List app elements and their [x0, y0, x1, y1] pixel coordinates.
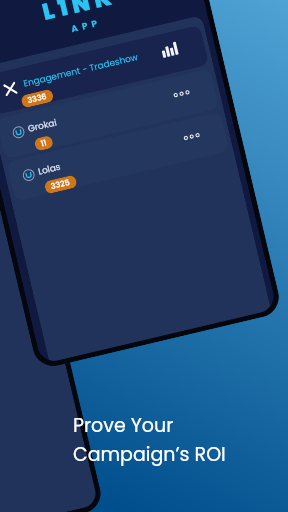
staticText: Lolas — [37, 161, 62, 179]
staticText: Prove Your — [73, 412, 174, 439]
staticText: L1NK — [39, 0, 119, 28]
staticText: 11 — [40, 137, 48, 149]
button[interactable]: Grokai — [0, 68, 219, 159]
button[interactable]: More options — [172, 88, 191, 100]
staticText: A P P — [70, 17, 100, 36]
staticText: Campaign’s ROI — [73, 441, 226, 468]
button[interactable]: Analytics — [160, 42, 179, 58]
button[interactable]: Close — [0, 25, 209, 115]
staticText: 3325 — [50, 177, 72, 192]
button[interactable]: More options — [182, 131, 201, 142]
staticText: 3336 — [26, 91, 48, 106]
staticText: Grokai — [27, 116, 59, 136]
button[interactable]: Close — [3, 82, 18, 96]
staticText: Engagement - Tradeshow — [22, 51, 140, 91]
button[interactable]: Lolas — [6, 111, 230, 202]
